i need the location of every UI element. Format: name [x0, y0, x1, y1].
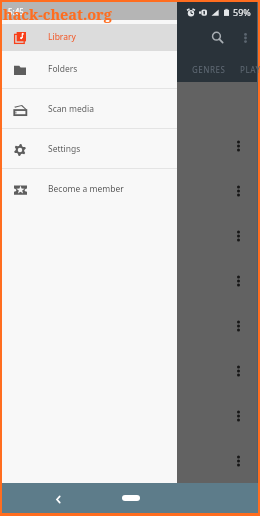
button[interactable]: Track options: [2, 168, 258, 213]
button[interactable]: Home: [122, 495, 140, 501]
staticText: Become a member: [48, 183, 124, 195]
staticText: Library: [48, 31, 76, 43]
staticText: 59%: [233, 6, 251, 18]
button[interactable]: Track options: [2, 123, 258, 168]
button[interactable]: Track options: [2, 303, 258, 348]
button[interactable]: Search: [204, 24, 230, 50]
button[interactable]: Track options: [2, 213, 258, 258]
button[interactable]: Track options: [2, 258, 258, 303]
button[interactable]: Back: [48, 489, 68, 509]
button[interactable]: Scan media: [2, 90, 177, 128]
button[interactable]: Become a member: [2, 170, 177, 208]
button[interactable]: Track options: [226, 134, 250, 158]
button[interactable]: Track options: [226, 359, 250, 383]
button[interactable]: Track options: [226, 269, 250, 293]
button[interactable]: More options: [233, 26, 257, 50]
staticText: hack-cheat.org: [3, 4, 112, 24]
button[interactable]: Track options: [226, 224, 250, 248]
button[interactable]: Track options: [226, 449, 250, 473]
staticText: Settings: [48, 143, 81, 155]
button[interactable]: Track options: [2, 348, 258, 393]
staticText: Folders: [48, 63, 78, 75]
button[interactable]: Track options: [2, 393, 258, 438]
button[interactable]: Track options: [226, 404, 250, 428]
button[interactable]: Settings: [2, 130, 177, 168]
button[interactable]: Track options: [226, 314, 250, 338]
button[interactable]: Folders: [2, 50, 177, 88]
staticText: GENRES: [192, 64, 226, 75]
staticText: 5:45: [8, 6, 24, 17]
button[interactable]: Track options: [226, 179, 250, 203]
staticText: Scan media: [48, 103, 94, 115]
button[interactable]: Library: [2, 18, 177, 56]
button[interactable]: Track options: [2, 438, 258, 483]
button[interactable]: [2, 24, 177, 51]
staticText: PLAY: [240, 64, 260, 75]
